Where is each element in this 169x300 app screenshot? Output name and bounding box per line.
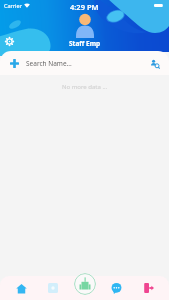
- button[interactable]: Logout: [137, 276, 161, 300]
- staticText: No more data ...: [62, 83, 108, 91]
- button[interactable]: Check in: [74, 273, 96, 295]
- button[interactable]: Add: [7, 56, 22, 71]
- button[interactable]: Search person: [147, 56, 162, 71]
- button[interactable]: Attendance: [41, 276, 65, 300]
- button[interactable]: Home: [9, 276, 33, 300]
- staticText: Carrier: [4, 2, 22, 9]
- staticText: Search Name...: [26, 59, 72, 68]
- button[interactable]: Settings: [3, 35, 16, 48]
- button[interactable]: Chat: [104, 276, 128, 300]
- staticText: Staff Emp: [69, 39, 101, 48]
- staticText: 4:29 PM: [70, 2, 99, 12]
